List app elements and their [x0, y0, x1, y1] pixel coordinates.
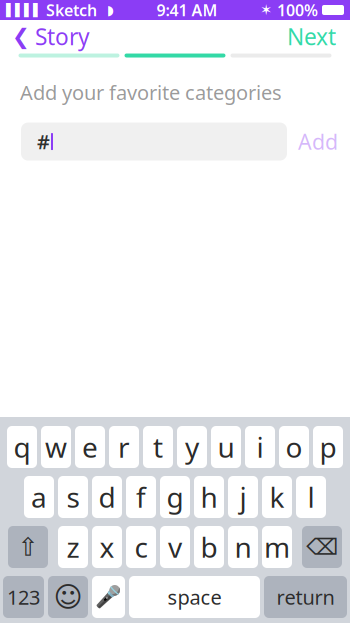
- button[interactable]: n: [228, 526, 258, 568]
- staticText: e: [82, 428, 98, 466]
- staticText: t: [153, 428, 163, 466]
- staticText: a: [31, 478, 47, 516]
- button[interactable]: r: [109, 426, 139, 468]
- button[interactable]: b: [194, 526, 224, 568]
- button[interactable]: ❮: [0, 14, 90, 58]
- staticText: k: [269, 478, 284, 516]
- staticText: Sketch: [42, 0, 97, 21]
- button[interactable]: w: [41, 426, 71, 468]
- staticText: Add: [298, 127, 338, 156]
- button[interactable]: m: [262, 526, 292, 568]
- button[interactable]: e: [75, 426, 105, 468]
- staticText: p: [319, 428, 336, 466]
- staticText: u: [217, 428, 234, 466]
- button[interactable]: v: [160, 526, 190, 568]
- button[interactable]: p: [313, 426, 343, 468]
- button[interactable]: g: [160, 476, 190, 518]
- button[interactable]: x: [92, 526, 122, 568]
- staticText: ▌▌▌▌: [6, 3, 42, 17]
- staticText: return: [276, 584, 334, 610]
- button[interactable]: 123: [3, 576, 44, 618]
- staticText: ☺: [53, 581, 82, 613]
- staticText: s: [66, 478, 79, 516]
- button[interactable]: Add: [287, 123, 349, 161]
- button[interactable]: l: [296, 476, 326, 518]
- staticText: 123: [7, 584, 40, 610]
- button[interactable]: Next: [287, 14, 350, 58]
- button[interactable]: d: [92, 476, 122, 518]
- staticText: x: [99, 528, 114, 566]
- button[interactable]: z: [58, 526, 88, 568]
- button[interactable]: j: [228, 476, 258, 518]
- button[interactable]: q: [7, 426, 37, 468]
- staticText: ✶: [260, 2, 277, 18]
- staticText: b: [200, 528, 217, 566]
- button[interactable]: Shift: [8, 526, 48, 568]
- staticText: v: [168, 528, 182, 566]
- button[interactable]: f: [126, 476, 156, 518]
- staticText: l: [307, 478, 314, 516]
- staticText: z: [66, 528, 79, 566]
- staticText: 100%: [277, 0, 322, 21]
- button[interactable]: Emoji: [48, 576, 88, 618]
- staticText: ⌫: [306, 534, 338, 560]
- staticText: o: [285, 428, 302, 466]
- staticText: r: [118, 428, 130, 466]
- button[interactable]: k: [262, 476, 292, 518]
- staticText: Add your favorite categories: [20, 79, 282, 106]
- staticText: q: [13, 428, 30, 466]
- staticText: d: [98, 478, 115, 516]
- staticText: Story: [35, 21, 90, 51]
- staticText: 🎤: [95, 585, 122, 609]
- staticText: ◗: [97, 2, 114, 17]
- button[interactable]: u: [211, 426, 241, 468]
- staticText: m: [264, 528, 290, 566]
- button[interactable]: s: [58, 476, 88, 518]
- staticText: g: [166, 478, 183, 516]
- button[interactable]: t: [143, 426, 173, 468]
- button[interactable]: Dictation: [92, 576, 125, 618]
- staticText: ⇧: [17, 533, 38, 561]
- button[interactable]: o: [279, 426, 309, 468]
- staticText: #: [37, 128, 50, 155]
- staticText: y: [185, 428, 199, 466]
- button[interactable]: i: [245, 426, 275, 468]
- staticText: Next: [287, 21, 336, 51]
- staticText: ❮: [12, 24, 30, 49]
- button[interactable]: return: [264, 576, 347, 618]
- staticText: 9:41 AM: [156, 0, 217, 21]
- staticText: space: [167, 584, 221, 610]
- staticText: c: [134, 528, 147, 566]
- staticText: f: [136, 478, 146, 516]
- staticText: j: [239, 478, 246, 516]
- button[interactable]: a: [24, 476, 54, 518]
- staticText: w: [45, 428, 67, 466]
- button[interactable]: y: [177, 426, 207, 468]
- button[interactable]: c: [126, 526, 156, 568]
- staticText: h: [200, 478, 217, 516]
- button[interactable]: space: [129, 576, 260, 618]
- button[interactable]: Delete: [302, 526, 342, 568]
- staticText: n: [234, 528, 251, 566]
- staticText: i: [256, 428, 263, 466]
- button[interactable]: h: [194, 476, 224, 518]
- button[interactable]: #: [21, 123, 287, 161]
